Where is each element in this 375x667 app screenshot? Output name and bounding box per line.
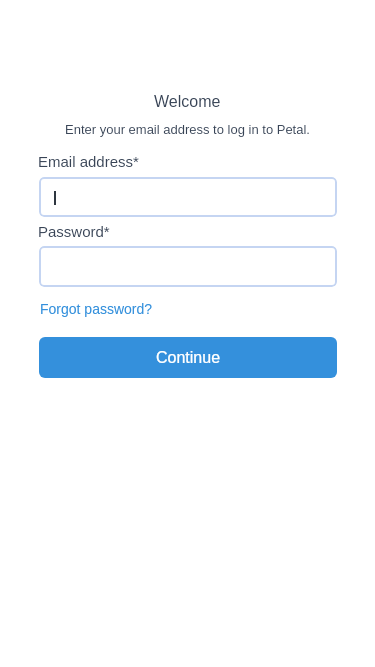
button[interactable]: Continue [39,337,337,378]
button[interactable] [39,246,337,287]
staticText: Password* [38,223,110,240]
staticText: Continue [156,349,221,367]
staticText: Enter your email address to log in to Pe… [65,122,310,137]
button[interactable] [39,177,337,217]
button[interactable]: Forgot password? [40,301,153,317]
staticText: Forgot password? [40,301,153,317]
staticText: Welcome [154,93,221,111]
staticText: Email address* [38,153,139,170]
